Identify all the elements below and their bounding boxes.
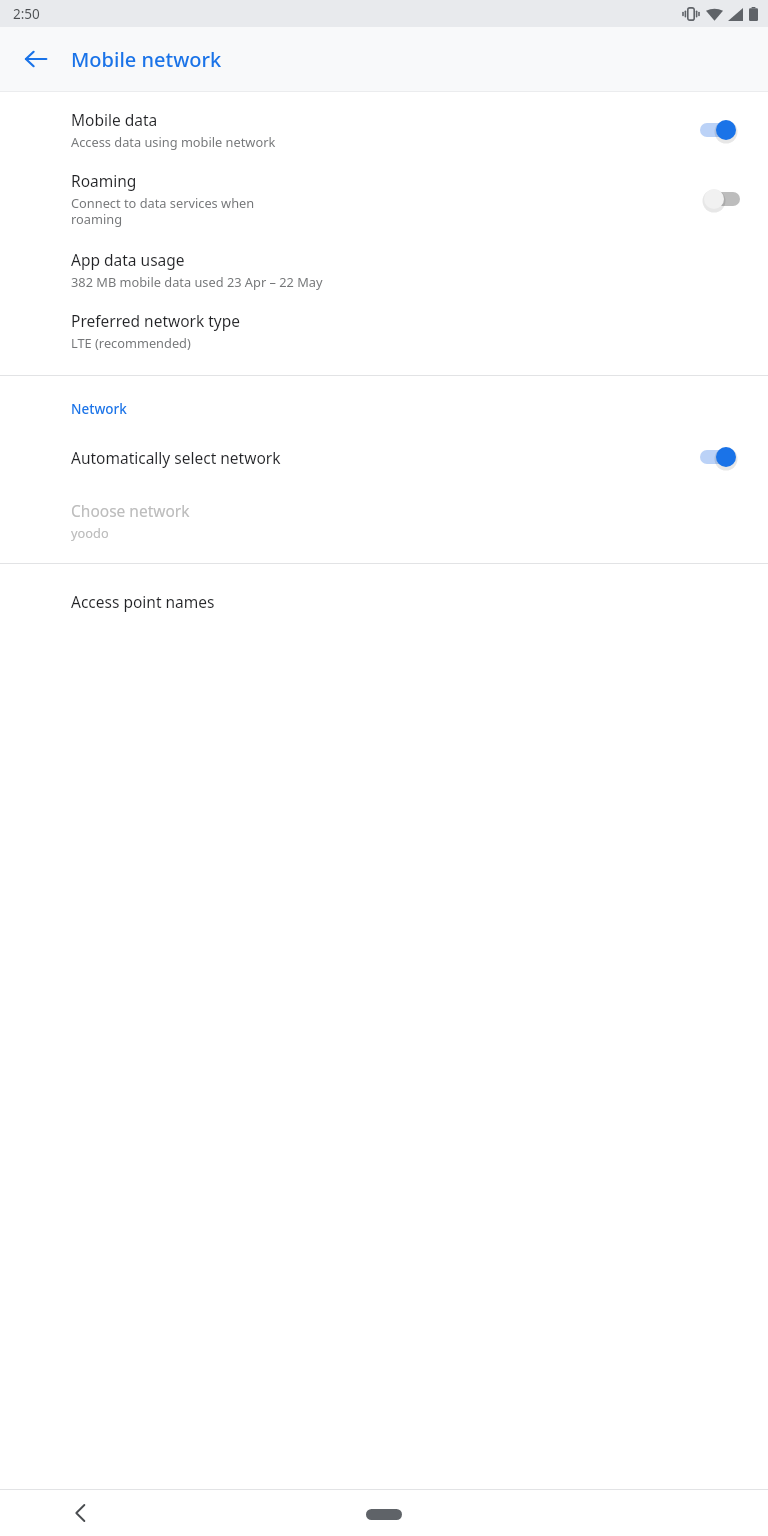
- staticText: 382 MB mobile data used 23 Apr – 22 May: [71, 273, 323, 290]
- button[interactable]: Switch on: [700, 442, 752, 472]
- button[interactable]: Choose network: [0, 500, 768, 541]
- button[interactable]: Back: [12, 35, 60, 83]
- button[interactable]: Home: [356, 1497, 412, 1531]
- staticText: Mobile network: [71, 46, 222, 73]
- staticText: Connect to data services when roaming: [71, 194, 255, 228]
- staticText: App data usage: [71, 249, 185, 270]
- staticText: yoodo: [71, 524, 109, 541]
- button[interactable]: Switch on: [700, 115, 752, 145]
- staticText: Preferred network type: [71, 310, 241, 331]
- staticText: Network: [71, 400, 127, 418]
- staticText: Automatically select network: [71, 447, 700, 468]
- button[interactable]: Roaming: [0, 170, 768, 249]
- staticText: LTE (recommended): [71, 334, 191, 351]
- button[interactable]: App data usage: [0, 249, 768, 310]
- staticText: Choose network: [71, 500, 190, 521]
- staticText: Roaming: [71, 170, 137, 191]
- staticText: Mobile data: [71, 109, 158, 130]
- staticText: Access point names: [71, 591, 215, 612]
- button[interactable]: Switch off: [700, 184, 752, 214]
- button[interactable]: Access point names: [0, 591, 768, 612]
- button[interactable]: Preferred network type: [0, 310, 768, 375]
- button[interactable]: Back: [60, 1493, 100, 1533]
- button[interactable]: Mobile data: [0, 109, 768, 170]
- staticText: 2:50: [13, 5, 40, 23]
- staticText: Access data using mobile network: [71, 133, 276, 150]
- button[interactable]: Automatically select network: [0, 442, 768, 472]
